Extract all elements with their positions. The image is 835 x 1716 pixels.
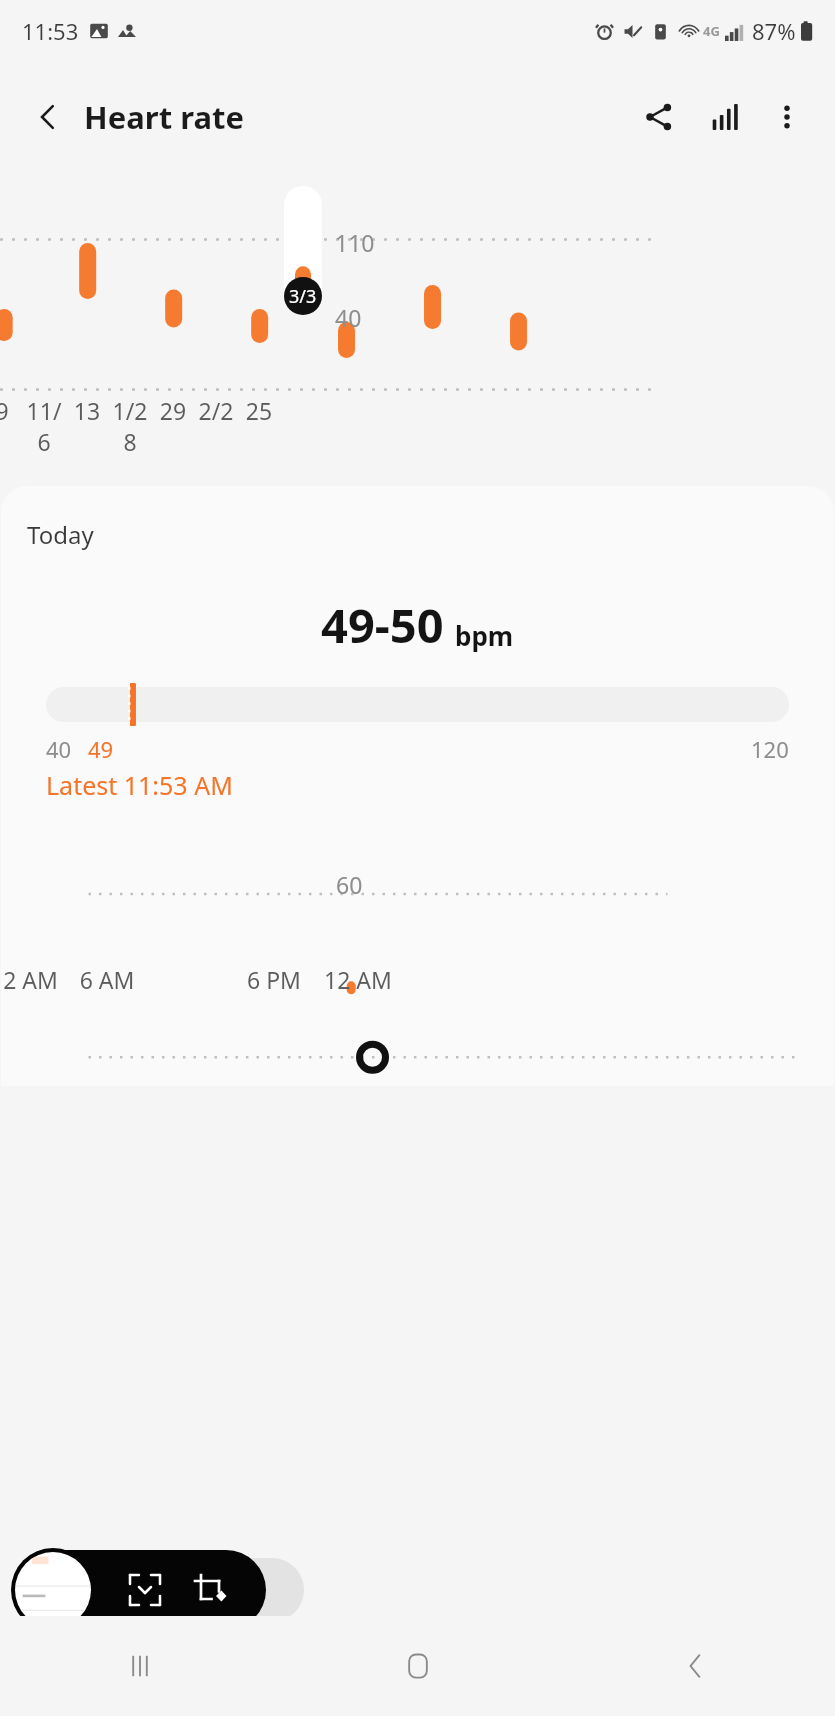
staticText: Today — [27, 518, 94, 551]
button[interactable]: Statistics — [697, 89, 753, 145]
staticText: 13 — [63, 395, 111, 426]
button[interactable]: Scroll capture — [117, 1562, 173, 1618]
button[interactable]: Recent apps — [0, 1616, 279, 1716]
staticText: 12 AM — [318, 964, 398, 995]
staticText: 60 — [336, 869, 363, 900]
staticText: 9 — [0, 395, 26, 426]
staticText: 12 AM — [1, 964, 64, 995]
staticText: 29 — [149, 395, 197, 426]
button[interactable]: 3/3 — [284, 277, 322, 315]
staticText: 2/2 — [192, 395, 240, 426]
staticText: 11/6 — [20, 395, 68, 457]
button[interactable] — [284, 186, 322, 315]
staticText: 49 — [88, 734, 114, 764]
staticText: 87% — [752, 16, 796, 46]
staticText: 3/3 — [289, 284, 317, 309]
staticText: 11:53 — [22, 16, 79, 46]
button[interactable]: Home — [279, 1616, 557, 1716]
staticText: 40 — [335, 302, 362, 333]
staticText: 40 — [46, 734, 72, 764]
staticText: 6 PM — [234, 964, 314, 995]
button[interactable]: More options — [759, 89, 815, 145]
button[interactable]: Back — [20, 89, 76, 145]
staticText: 110 — [335, 227, 375, 258]
staticText: 25 — [235, 395, 283, 426]
staticText: Latest 11:53 AM — [46, 768, 233, 802]
staticText: 120 — [751, 734, 789, 764]
staticText: 49-50 — [321, 593, 444, 657]
staticText: 6 AM — [67, 964, 147, 995]
button[interactable]: Crop and edit — [182, 1562, 238, 1618]
staticText: Heart rate — [84, 96, 244, 138]
button[interactable]: Screenshot preview — [15, 1552, 91, 1628]
staticText: bpm — [455, 618, 514, 653]
button[interactable]: Back — [557, 1616, 835, 1716]
staticText: 1/28 — [106, 395, 154, 457]
button[interactable]: Share — [631, 89, 687, 145]
staticText: 4G — [703, 22, 720, 40]
